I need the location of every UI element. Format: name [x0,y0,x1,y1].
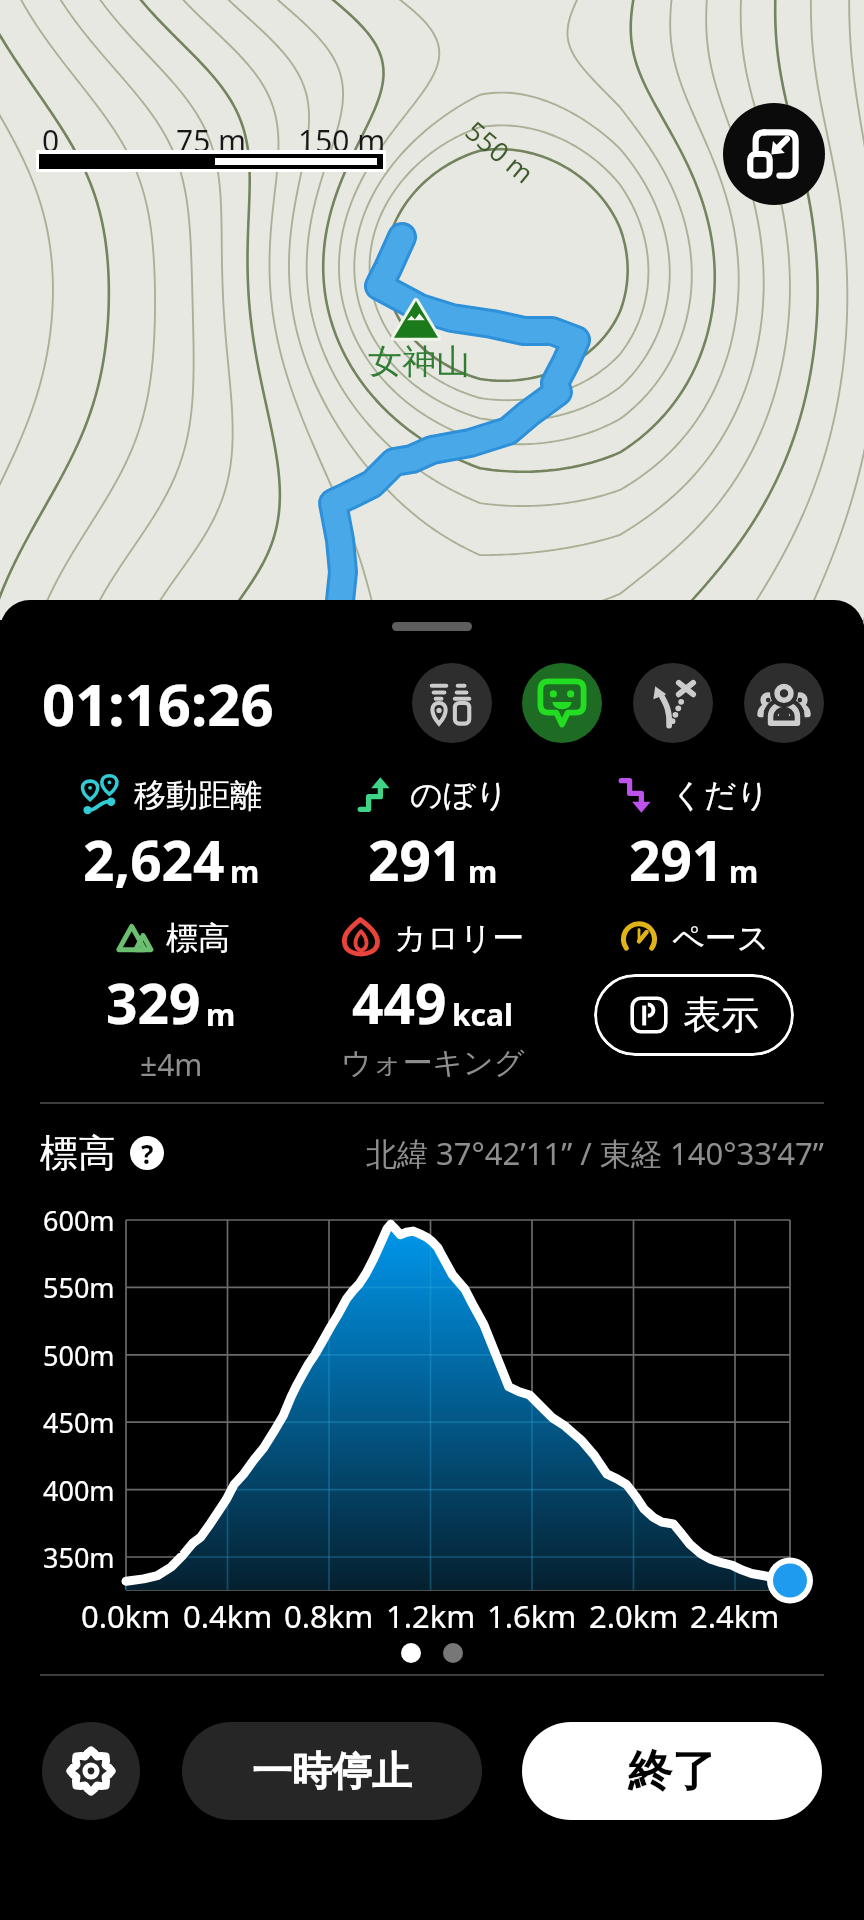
staticText: m [729,851,759,892]
staticText: 標高 [40,1129,116,1177]
button[interactable]: 表示 [594,974,794,1056]
staticText: 291 [368,822,463,897]
staticText: カロリー [394,918,525,958]
staticText: 2.0km [589,1595,679,1637]
staticText: m [230,851,260,892]
button[interactable]: Checkpoints [412,663,492,743]
staticText: ペース [672,918,770,958]
button[interactable]: Minimize map [723,103,825,205]
staticText: 一時停止 [252,1746,412,1796]
staticText: 0.8km [284,1595,374,1637]
staticText: kcal [452,994,513,1035]
staticText: 2,624 [83,822,225,897]
staticText: 01:16:26 [42,664,274,743]
staticText: 1.6km [487,1595,577,1637]
staticText: 450m [43,1404,115,1441]
staticText: ウォーキング [341,1044,525,1082]
staticText: ±4m [140,1044,203,1085]
staticText: 2.4km [690,1595,780,1637]
staticText: 329 [106,965,201,1040]
button[interactable]: Off route [633,663,713,743]
staticText: 291 [629,822,724,897]
staticText: 400m [43,1472,115,1509]
staticText: 449 [352,965,447,1040]
staticText: 350m [43,1539,115,1576]
staticText: m [468,851,498,892]
staticText: 0.4km [183,1595,273,1637]
staticText: 75 m [176,120,247,150]
staticText: ? [141,1136,154,1170]
staticText: 0.0km [81,1595,171,1637]
staticText: 150 m [298,120,386,150]
staticText: 北緯 37°42’11” / 東経 140°33’47” [366,1132,824,1174]
staticText: 移動距離 [134,775,262,815]
staticText: 600m [43,1202,115,1239]
staticText: 女神山 [368,340,470,383]
staticText: のぼり [410,775,509,815]
staticText: 標高 [166,918,230,958]
button[interactable]: Group [744,663,824,743]
button[interactable]: Settings [42,1722,140,1820]
staticText: 0 [42,120,60,150]
staticText: 500m [43,1337,115,1374]
button[interactable]: 一時停止 [182,1722,482,1820]
staticText: 550 m [458,112,542,191]
staticText: 1.2km [386,1595,476,1637]
staticText: 550m [43,1269,115,1306]
staticText: 表示 [683,991,759,1039]
button[interactable]: Messages [522,663,602,743]
staticText: 終了 [628,1744,716,1799]
button[interactable]: 終了 [522,1722,822,1820]
staticText: くだり [671,775,770,815]
button[interactable]: Help [130,1136,164,1170]
staticText: m [206,994,236,1035]
